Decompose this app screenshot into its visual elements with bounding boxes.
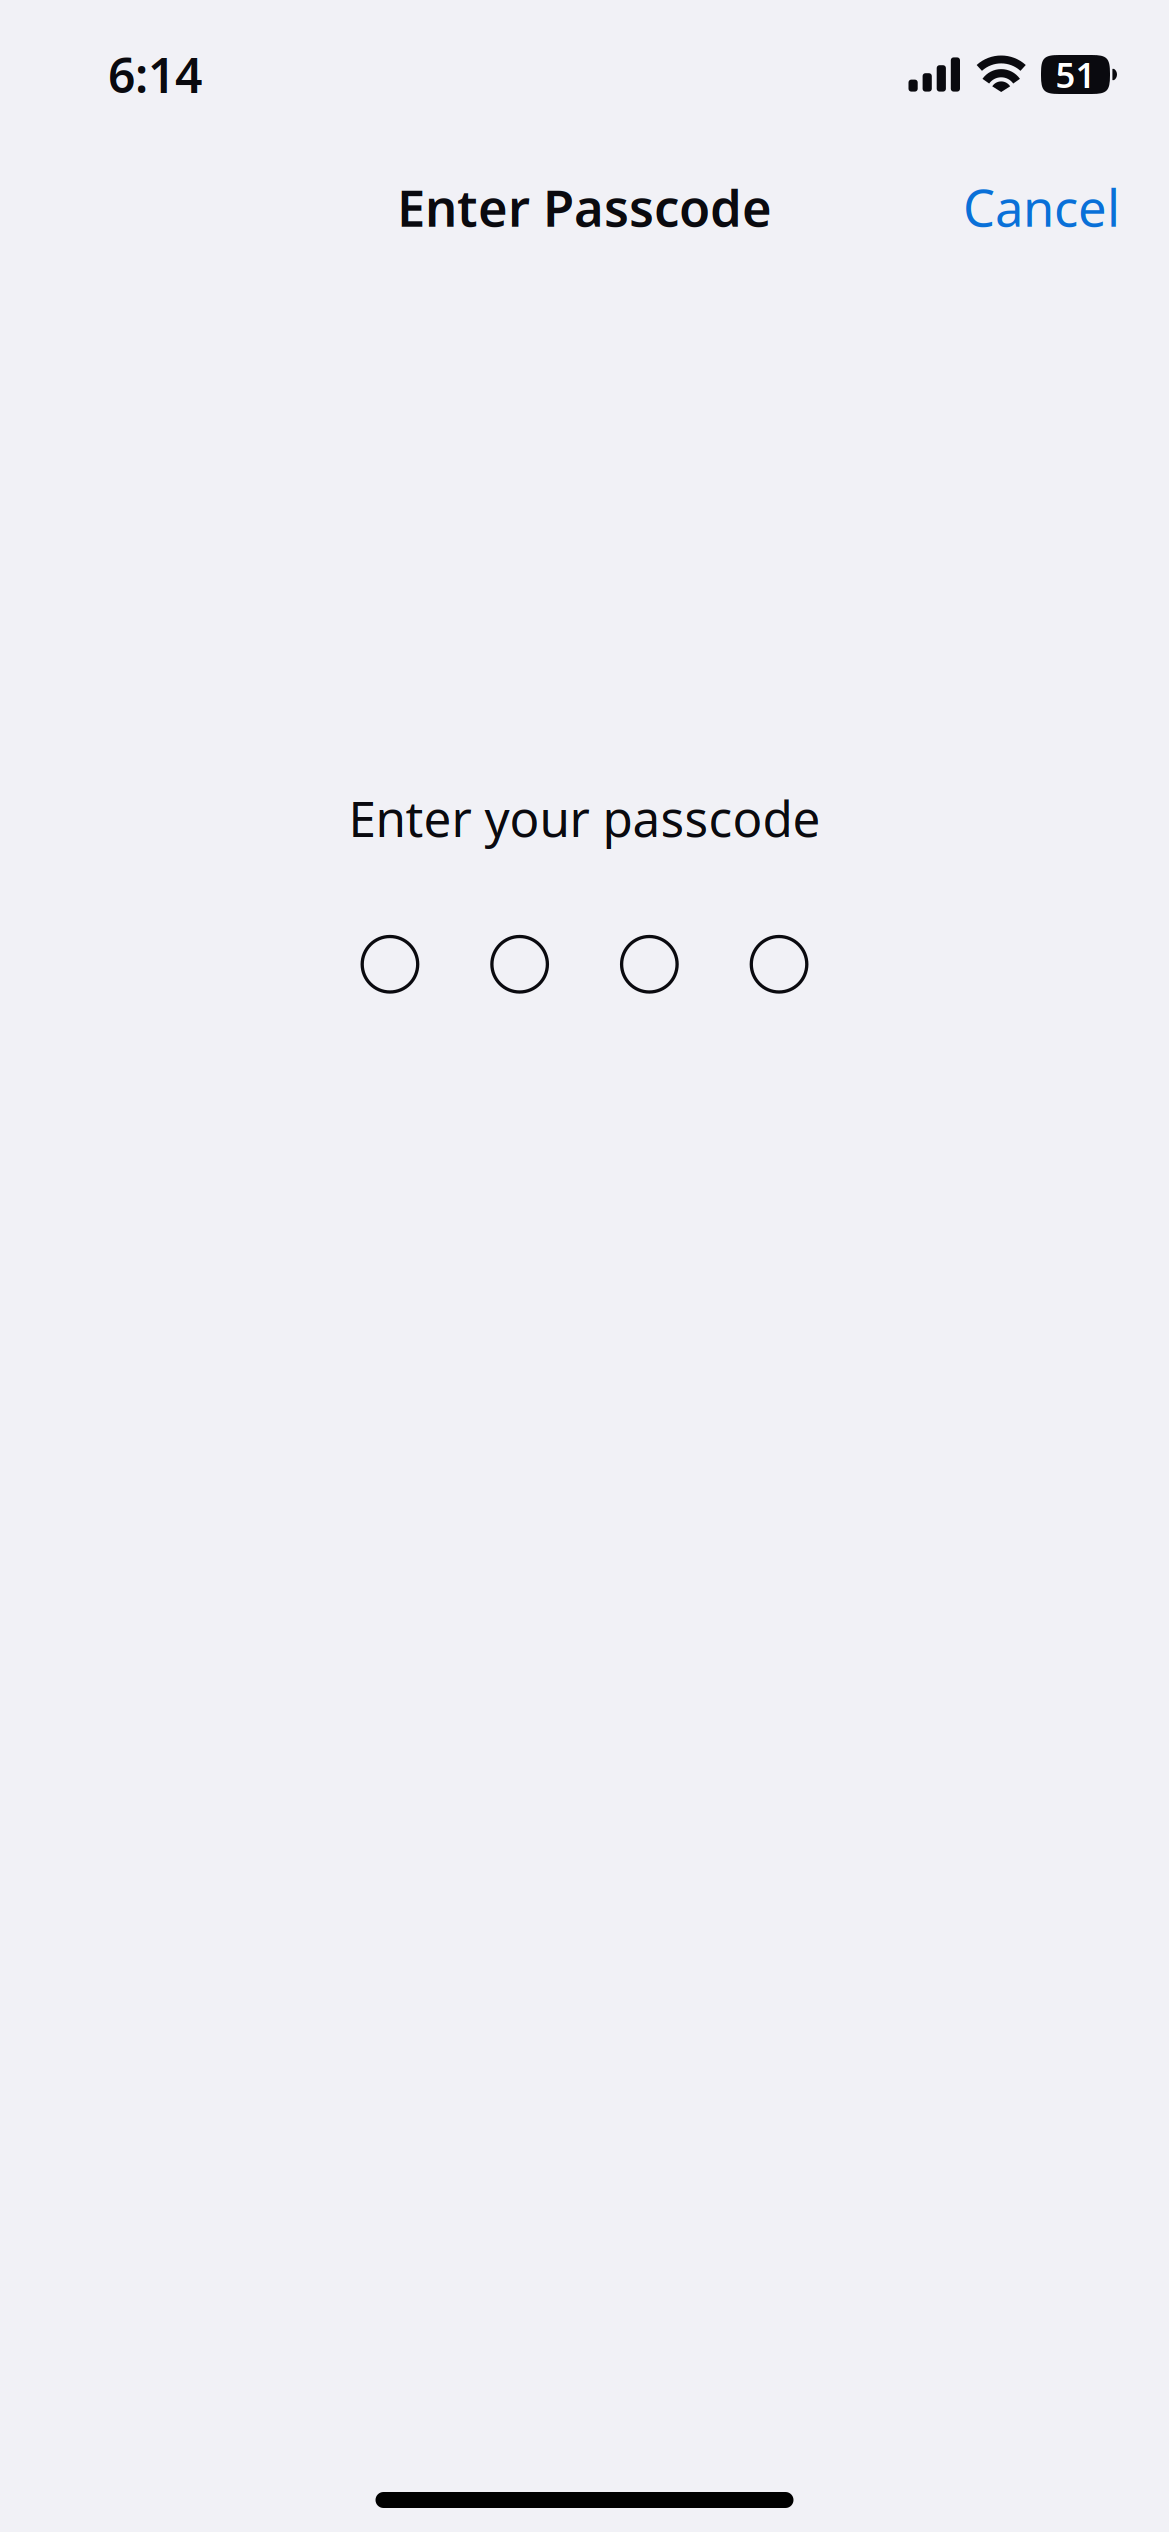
button[interactable]: Passcode — [362, 936, 807, 992]
staticText: 51 — [1055, 51, 1095, 97]
button[interactable]: Cancel — [955, 161, 1128, 253]
staticText: Enter Passcode — [397, 173, 772, 241]
staticText: 6:14 — [108, 43, 202, 106]
staticText: Cancel — [963, 173, 1120, 241]
staticText: Enter your passcode — [348, 785, 820, 850]
